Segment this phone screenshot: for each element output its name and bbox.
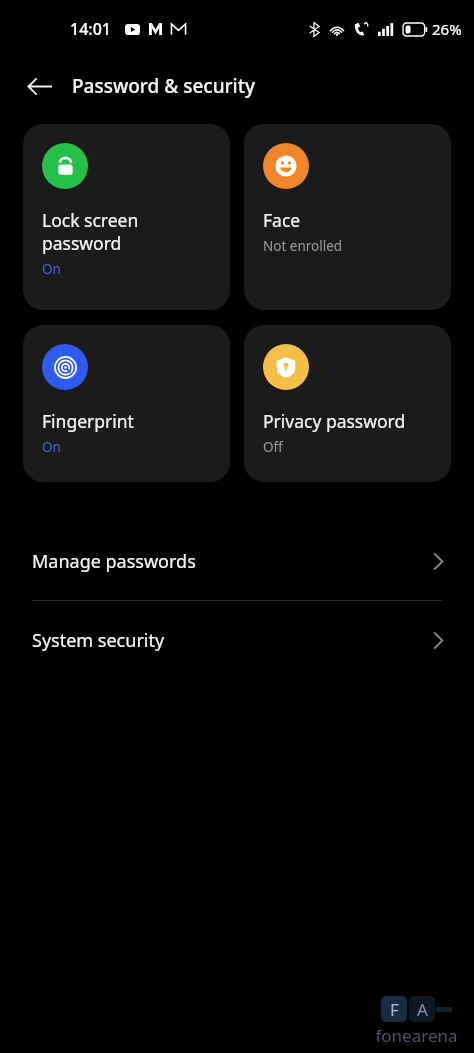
staticText: System security	[32, 628, 433, 653]
staticText: Fingerprint	[42, 409, 134, 433]
button[interactable]: Lock screen password	[23, 124, 230, 310]
button[interactable]: Back	[16, 63, 62, 109]
staticText: fonearena	[375, 1024, 458, 1047]
button[interactable]: Fingerprint	[23, 325, 230, 482]
staticText: A	[417, 998, 428, 1021]
staticText: Manage passwords	[32, 549, 433, 574]
staticText: On	[42, 260, 61, 278]
button[interactable]: Face	[244, 124, 451, 310]
button[interactable]: Privacy password	[244, 325, 451, 482]
staticText: Password & security	[72, 73, 256, 99]
staticText: F	[390, 998, 399, 1021]
staticText: Lock screen password	[42, 208, 139, 255]
staticText: 14:01	[70, 18, 111, 40]
button[interactable]: Manage passwords	[0, 522, 474, 600]
staticText: Not enrolled	[263, 237, 343, 255]
staticText: Off	[263, 438, 283, 456]
staticText: Privacy password	[263, 409, 406, 433]
staticText: 26%	[432, 19, 462, 39]
button[interactable]: System security	[0, 601, 474, 679]
staticText: Face	[263, 208, 301, 232]
staticText: On	[42, 438, 61, 456]
